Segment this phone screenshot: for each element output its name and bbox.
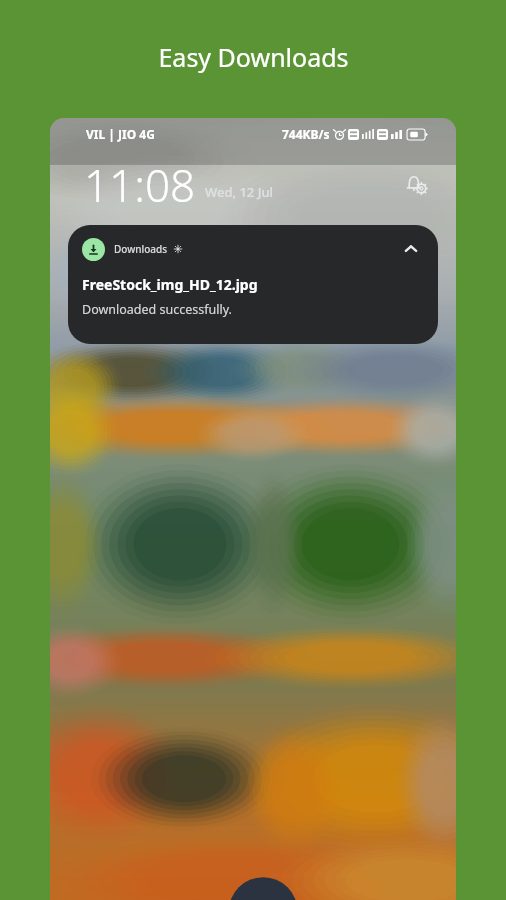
staticText: Downloads: [114, 242, 168, 256]
staticText: Downloaded successfully.: [82, 301, 232, 318]
button[interactable]: Notification settings: [402, 170, 432, 200]
staticText: VIL | JIO 4G: [86, 126, 155, 142]
staticText: FreeStock_img_HD_12.jpg: [82, 275, 258, 294]
staticText: Easy Downloads: [158, 40, 349, 74]
button[interactable]: Collapse notification: [398, 236, 424, 262]
staticText: Wed, 12 Jul: [205, 183, 274, 201]
button[interactable]: Downloads: [68, 225, 438, 344]
staticText: 744KB/s: [282, 126, 330, 142]
staticText: 11:08: [84, 155, 196, 215]
